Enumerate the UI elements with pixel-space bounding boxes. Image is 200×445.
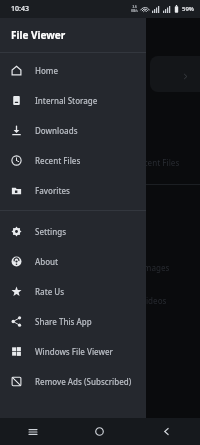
button[interactable]: About bbox=[0, 246, 146, 276]
button[interactable]: Downloads bbox=[0, 115, 146, 145]
staticText: 10:43 bbox=[11, 4, 29, 14]
staticText: Remove Ads (Subscribed) bbox=[35, 376, 132, 387]
staticText: 59% bbox=[182, 5, 194, 13]
button[interactable]: Rate Us bbox=[0, 276, 146, 306]
staticText: Windows File Viewer bbox=[35, 346, 113, 357]
staticText: KB/s bbox=[131, 9, 138, 13]
button[interactable]: Home bbox=[66, 418, 133, 445]
staticText: File Viewer bbox=[11, 28, 66, 42]
button[interactable]: Recent apps bbox=[0, 418, 66, 445]
staticText: Images bbox=[141, 262, 170, 273]
staticText: Downloads bbox=[35, 125, 78, 136]
staticText: Home bbox=[35, 65, 59, 76]
button[interactable]: Favorites bbox=[0, 175, 146, 205]
button[interactable]: Recent Files bbox=[0, 145, 146, 175]
button[interactable]: Windows File Viewer bbox=[0, 336, 146, 366]
button[interactable]: Share This App bbox=[0, 306, 146, 336]
button[interactable]: Back bbox=[133, 418, 200, 445]
staticText: Videos bbox=[141, 295, 167, 306]
staticText: Internal Storage bbox=[35, 95, 98, 106]
staticText: Share This App bbox=[35, 316, 92, 327]
staticText: About bbox=[35, 256, 59, 267]
staticText: Settings bbox=[35, 226, 67, 237]
staticText: 3.6 bbox=[132, 5, 137, 9]
staticText: Recent Files bbox=[35, 155, 81, 166]
button[interactable]: Settings bbox=[0, 216, 146, 246]
button[interactable]: Internal Storage bbox=[0, 85, 146, 115]
staticText: Favorites bbox=[35, 185, 70, 196]
button[interactable]: Home bbox=[0, 55, 146, 85]
staticText: Recent Files bbox=[134, 157, 180, 168]
button[interactable]: Remove Ads (Subscribed) bbox=[0, 366, 146, 396]
staticText: Rate Us bbox=[35, 286, 65, 297]
